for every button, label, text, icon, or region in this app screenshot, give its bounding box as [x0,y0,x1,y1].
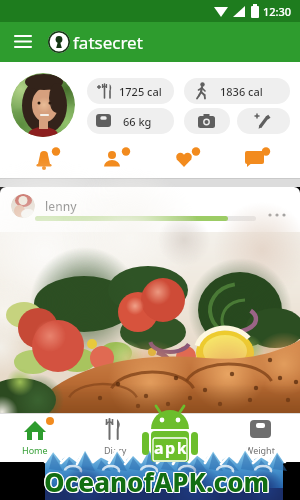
button[interactable]: 1836 cal [184,78,290,104]
button[interactable]: Weight [230,415,290,461]
staticText: OceanofAPK.com [45,465,271,500]
button[interactable] [164,146,206,174]
staticText: OceanofAPK.com [44,465,270,500]
button[interactable]: 1725 cal [87,78,174,104]
staticText: OceanofAPK.com [44,464,270,499]
staticText: Weight [245,444,275,456]
staticText: lenny [45,198,77,214]
button[interactable] [266,211,288,219]
button[interactable] [94,146,136,174]
staticText: fatsecret [73,31,143,54]
button[interactable] [237,108,290,134]
button[interactable]: Home [5,415,65,461]
button[interactable]: 66 kg [87,108,174,134]
staticText: 12:30 [263,4,292,19]
staticText: Home [22,444,48,456]
staticText: apk [154,437,189,459]
button[interactable] [8,30,40,56]
button[interactable] [11,73,75,137]
staticText: OceanofAPK.com [44,463,270,498]
button[interactable] [234,146,276,174]
staticText: 1836 cal [220,84,263,99]
staticText: OceanofAPK.com [43,463,269,498]
button[interactable]: Diary [85,415,145,461]
button[interactable]: lenny [0,187,300,232]
staticText: 1725 cal [119,84,162,99]
staticText: OceanofAPK.com [43,464,269,499]
staticText: Diary [104,444,127,456]
button[interactable] [24,146,66,174]
staticText: 66 kg [123,114,152,129]
button[interactable] [184,108,230,134]
staticText: OceanofAPK.com [45,464,271,499]
